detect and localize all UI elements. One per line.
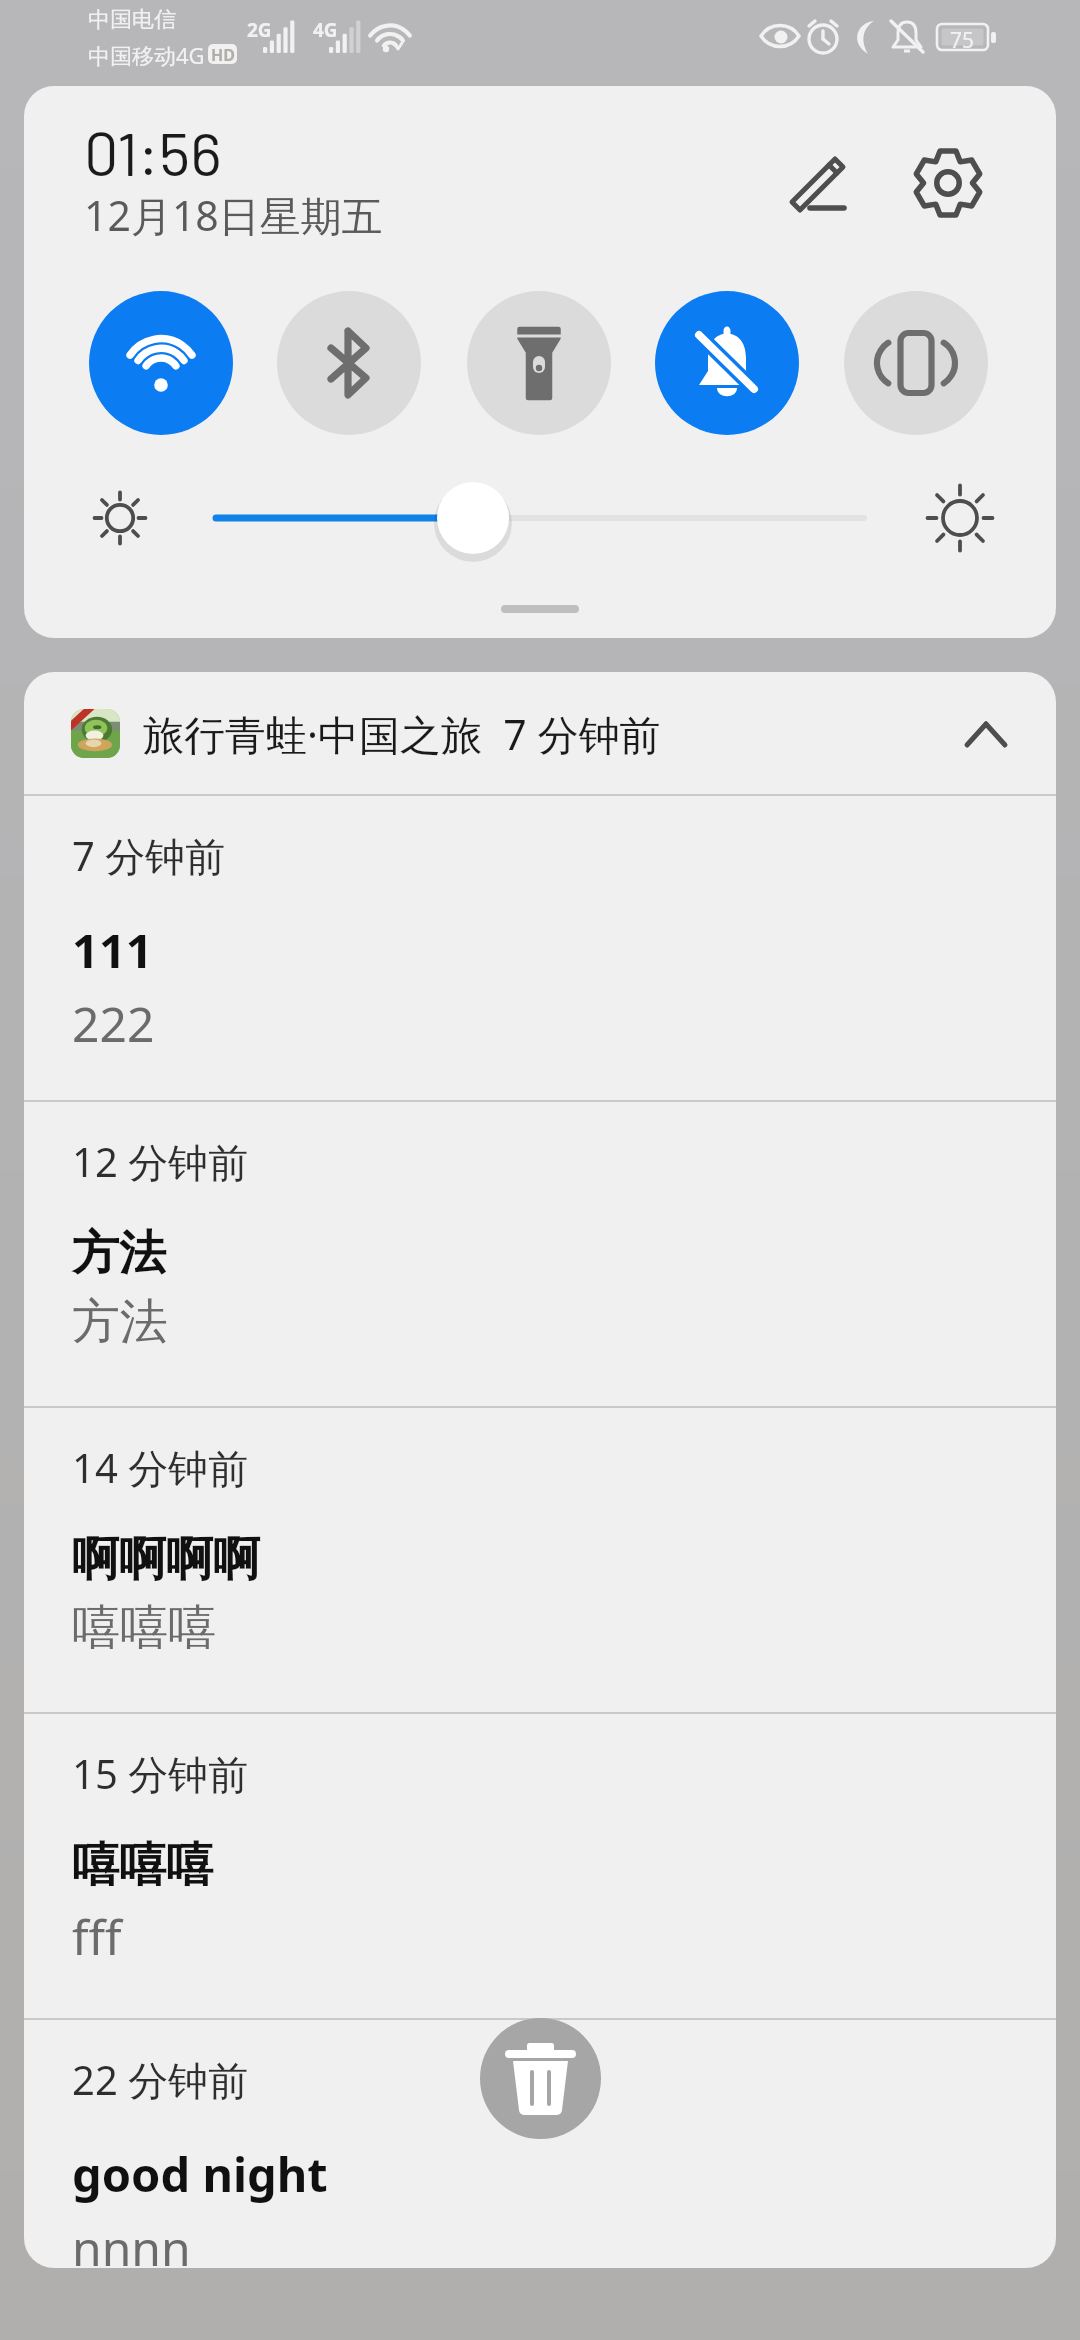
staticText: 7 分钟前 — [72, 828, 226, 883]
staticText: 01:56 — [84, 115, 222, 188]
staticText: 2G — [247, 17, 272, 43]
staticText: fff — [72, 1904, 122, 1969]
button[interactable]: 7 分钟前 — [24, 797, 1056, 1101]
button[interactable]: 22 分钟前 — [24, 2021, 1056, 2268]
staticText: nnnn — [72, 2215, 191, 2268]
button[interactable]: 12 分钟前 — [24, 1103, 1056, 1407]
staticText: 中国电信 — [88, 6, 176, 34]
button[interactable]: Collapse notification group — [936, 684, 1036, 784]
staticText: 111 — [72, 918, 153, 982]
button[interactable]: Flashlight — [468, 292, 610, 434]
staticText: 22 分钟前 — [72, 2052, 249, 2107]
staticText: 12月18日星期五 — [84, 187, 383, 243]
staticText: 12 分钟前 — [72, 1134, 249, 1189]
button[interactable]: Delete notification — [480, 2018, 601, 2139]
staticText: good night — [72, 2142, 328, 2206]
button[interactable]: 15 分钟前 — [24, 1715, 1056, 2019]
button[interactable]: Brightness — [174, 482, 906, 554]
staticText: 嘻嘻嘻 — [72, 1836, 213, 1895]
button[interactable]: Settings — [893, 139, 1013, 259]
staticText: 啊啊啊啊 — [72, 1530, 260, 1589]
button[interactable]: Silent mode — [656, 292, 798, 434]
button[interactable]: Expand quick settings — [434, 581, 646, 637]
button[interactable]: 14 分钟前 — [24, 1409, 1056, 1713]
staticText: 方法 — [72, 1224, 166, 1283]
staticText: 15 分钟前 — [72, 1746, 249, 1801]
staticText: HD — [211, 44, 235, 64]
staticText: 中国移动4G — [88, 40, 205, 70]
staticText: 4G — [313, 17, 338, 43]
button[interactable]: Bluetooth — [278, 292, 420, 434]
button[interactable]: 旅行青蛙·中国之旅 7 分钟前 — [24, 672, 1056, 795]
staticText: 75 — [950, 26, 975, 55]
staticText: 旅行青蛙·中国之旅 7 分钟前 — [143, 706, 661, 762]
button[interactable]: Vibrate — [845, 292, 987, 434]
staticText: 222 — [72, 991, 155, 1056]
button[interactable]: Edit quick settings — [776, 121, 886, 231]
staticText: 方法 — [72, 1292, 168, 1352]
staticText: 嘻嘻嘻 — [72, 1598, 216, 1658]
button[interactable]: WLAN — [90, 292, 232, 434]
staticText: 14 分钟前 — [72, 1440, 249, 1495]
